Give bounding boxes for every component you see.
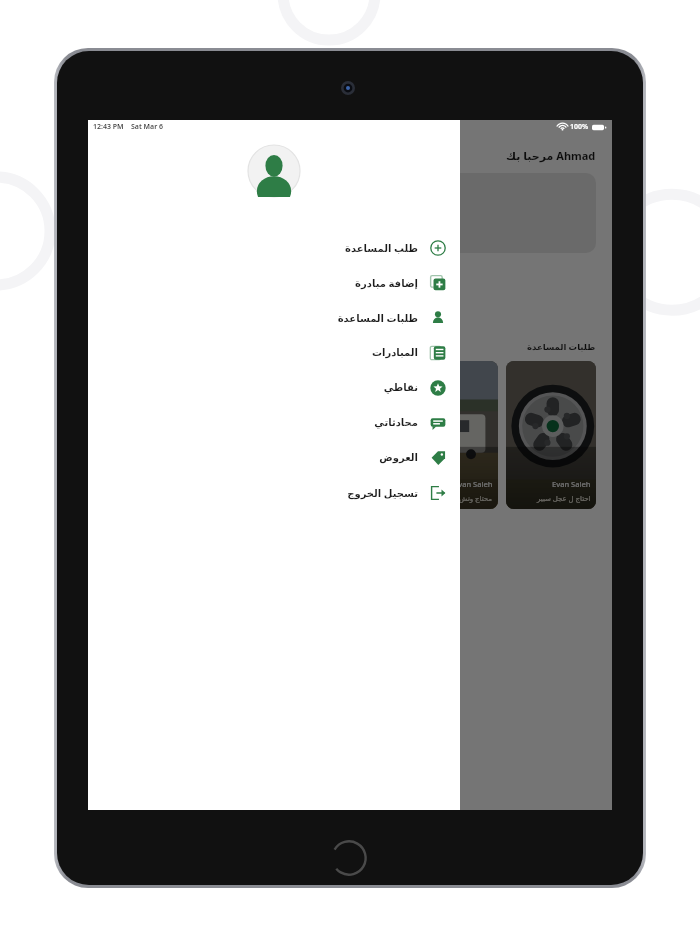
- button[interactable]: نقاطي: [88, 370, 460, 405]
- staticText: طلب المساعدة: [344, 241, 418, 255]
- button[interactable]: طلبات المساعدة: [88, 300, 460, 335]
- button[interactable]: Profile photo: [248, 145, 300, 197]
- button[interactable]: [104, 173, 596, 253]
- staticText: طلبات المساعدة: [337, 311, 418, 325]
- staticText: محتاج ونش: [459, 494, 493, 504]
- button[interactable]: محادثاتي: [88, 405, 460, 440]
- staticText: طلبات المساعدة: [527, 341, 596, 353]
- button[interactable]: المبادرات: [88, 335, 460, 370]
- staticText: Evan Saleh: [454, 479, 493, 489]
- button[interactable]: Evan Saleh: [506, 361, 596, 509]
- staticText: إضافة مبادرة: [355, 276, 418, 290]
- button[interactable]: إضافة مبادرة: [88, 265, 460, 300]
- button[interactable]: Evan Saleh: [408, 361, 498, 509]
- staticText: المبادرات: [371, 347, 418, 359]
- staticText: نقاطي: [383, 382, 418, 394]
- staticText: Sat Mar 6: [131, 122, 164, 132]
- staticText: تسجيل الخروج: [347, 486, 418, 500]
- button[interactable]: العروض: [88, 440, 460, 475]
- staticText: مرحبا بك Ahmad: [506, 148, 596, 163]
- other: Home: [323, 832, 375, 884]
- staticText: 12:43 PM: [93, 122, 124, 132]
- staticText: العروض: [379, 452, 418, 464]
- staticText: احتاج ل عجل سبير: [537, 494, 591, 504]
- staticText: محادثاتي: [374, 417, 418, 429]
- staticText: Evan Saleh: [552, 479, 591, 489]
- button[interactable]: تسجيل الخروج: [88, 475, 460, 510]
- button[interactable]: طلب المساعدة: [88, 230, 460, 265]
- staticText: 100%: [570, 122, 589, 132]
